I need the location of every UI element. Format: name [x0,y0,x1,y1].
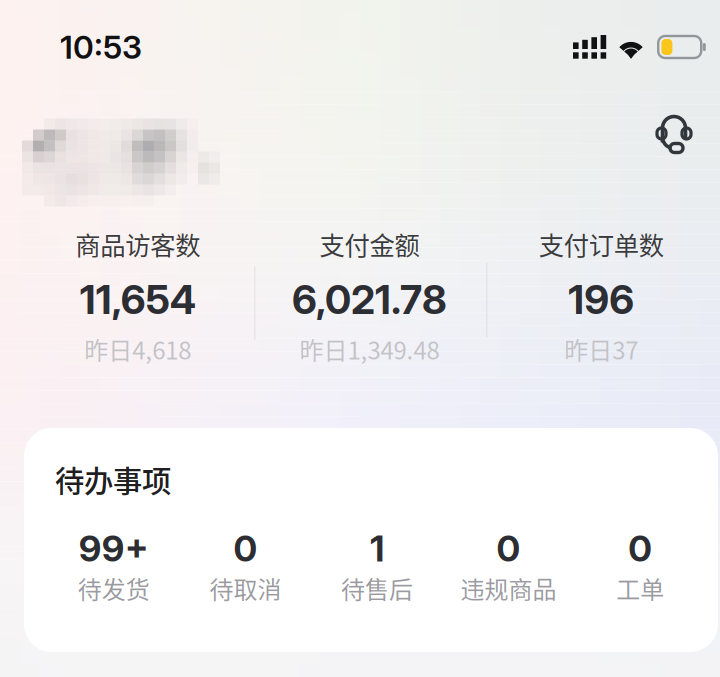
staticText: 昨日4,618 [84,332,191,366]
button[interactable]: 0 [574,533,706,600]
staticText: 6,021.78 [292,275,447,324]
button[interactable]: 支付订单数 [485,231,717,361]
staticText: 商品访客数 [75,226,200,262]
staticText: 196 [568,275,634,324]
staticText: 支付订单数 [539,226,664,262]
staticText: 待售后 [341,571,413,605]
button[interactable]: 0 [443,533,574,600]
staticText: 0 [497,527,521,570]
button[interactable]: 1 [311,533,443,600]
staticText: 10:53 [60,28,142,66]
staticText: 违规商品 [461,571,557,605]
button[interactable]: 99+ [48,533,180,600]
staticText: 待发货 [78,571,150,605]
staticText: 工单 [616,571,664,605]
staticText: 昨日37 [564,332,638,366]
button[interactable]: 客服 [638,100,710,166]
staticText: 支付金额 [319,226,419,262]
staticText: 0 [233,527,257,570]
staticText: 1 [370,527,384,570]
staticText: 11,654 [80,275,196,324]
staticText: 99+ [79,527,149,570]
staticText: 0 [628,527,652,570]
staticText: 昨日1,349.48 [299,332,439,366]
button[interactable]: 商品访客数 [22,231,254,361]
staticText: 待取消 [209,571,281,605]
button[interactable]: 支付金额 [254,231,485,361]
button[interactable]: 0 [180,533,311,600]
staticText: 待办事项 [55,458,171,500]
